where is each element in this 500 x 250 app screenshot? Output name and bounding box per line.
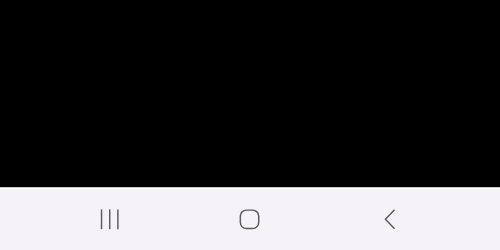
button[interactable]: Back bbox=[358, 187, 422, 250]
button[interactable]: Home bbox=[218, 187, 282, 250]
button[interactable]: Recents bbox=[78, 187, 142, 250]
